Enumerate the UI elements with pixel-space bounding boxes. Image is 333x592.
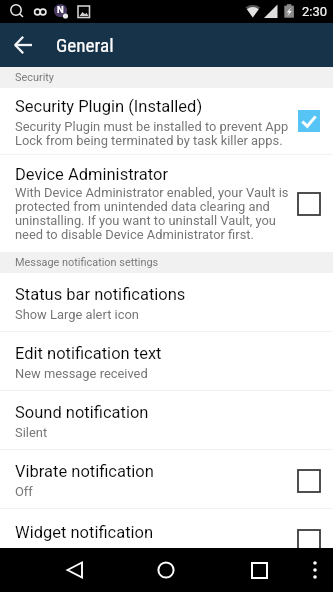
staticText: General bbox=[56, 34, 114, 57]
button[interactable]: Toggle setting bbox=[298, 193, 320, 215]
button[interactable]: Sound notification bbox=[0, 391, 333, 450]
staticText: Silent bbox=[15, 425, 48, 440]
staticText: Message notification settings bbox=[15, 256, 159, 269]
staticText: 2:30 bbox=[302, 4, 328, 19]
button[interactable]: Recent apps bbox=[237, 548, 281, 592]
staticText: Vibrate notification bbox=[15, 462, 154, 481]
button[interactable]: Widget notification bbox=[0, 509, 333, 548]
button[interactable]: Security Plugin (Installed) bbox=[0, 88, 333, 154]
staticText: Sound notification bbox=[15, 403, 149, 422]
button[interactable]: More options bbox=[298, 548, 331, 592]
staticText: Widget notification bbox=[15, 523, 154, 542]
staticText: Status bar notifications bbox=[15, 285, 186, 304]
staticText: Show Large alert icon bbox=[15, 307, 139, 322]
button[interactable]: Edit notification text bbox=[0, 332, 333, 391]
button[interactable]: Navigate up bbox=[0, 23, 45, 67]
staticText: Off bbox=[15, 484, 33, 499]
staticText: Security Plugin must be installed to pre… bbox=[15, 119, 289, 148]
button[interactable]: Vibrate notification bbox=[0, 450, 333, 509]
staticText: Security Plugin (Installed) bbox=[15, 97, 203, 116]
button[interactable]: Device Administrator bbox=[0, 155, 333, 252]
staticText: N bbox=[57, 4, 64, 15]
button[interactable]: Back bbox=[53, 548, 97, 592]
staticText: With Device Administrator enabled, your … bbox=[15, 185, 289, 242]
button[interactable]: Home bbox=[144, 548, 188, 592]
staticText: Edit notification text bbox=[15, 344, 162, 363]
button[interactable]: Toggle setting bbox=[298, 470, 320, 492]
staticText: New message received bbox=[15, 366, 148, 381]
staticText: Security bbox=[15, 71, 54, 84]
button[interactable]: Status bar notifications bbox=[0, 273, 333, 332]
button[interactable]: Toggle setting bbox=[298, 530, 320, 552]
staticText: Device Administrator bbox=[15, 165, 169, 184]
button[interactable]: Toggle setting bbox=[298, 110, 320, 132]
